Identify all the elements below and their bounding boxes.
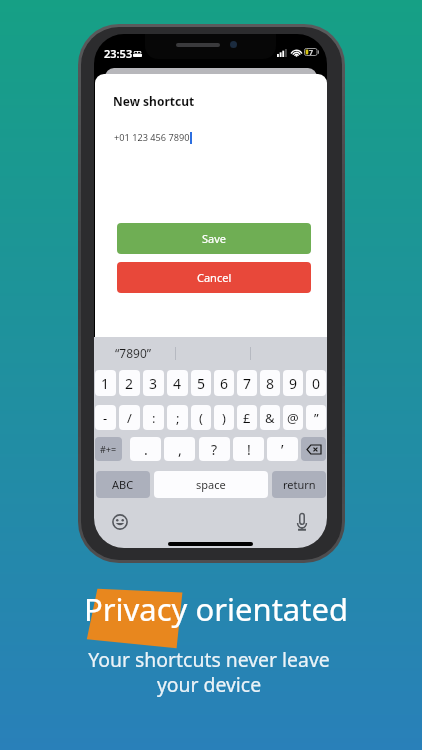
staticText: 1 bbox=[101, 374, 110, 393]
button[interactable]: 3 bbox=[143, 370, 164, 396]
button[interactable]: - bbox=[95, 405, 116, 430]
button[interactable]: , bbox=[164, 437, 195, 461]
staticText: ; bbox=[176, 409, 180, 427]
staticText: +01 123 456 7890 bbox=[114, 131, 190, 144]
button[interactable]: “7890” bbox=[99, 337, 168, 368]
staticText: 7 bbox=[309, 48, 314, 56]
staticText: Save bbox=[202, 231, 227, 246]
staticText: ABC bbox=[112, 477, 134, 492]
button[interactable]: ( bbox=[191, 405, 211, 430]
button[interactable]: @ bbox=[283, 405, 303, 430]
staticText: 4 bbox=[173, 374, 182, 393]
staticText: Cancel bbox=[197, 270, 232, 285]
button[interactable]: 0 bbox=[306, 370, 326, 396]
staticText: ) bbox=[222, 409, 226, 427]
button[interactable]: ) bbox=[214, 405, 234, 430]
staticText: - bbox=[103, 409, 108, 427]
staticText: 2 bbox=[125, 374, 134, 393]
staticText: , bbox=[178, 440, 182, 459]
staticText: ’ bbox=[281, 440, 284, 459]
staticText: @ bbox=[287, 409, 299, 427]
button[interactable]: 5 bbox=[191, 370, 211, 396]
staticText: ” bbox=[314, 409, 319, 427]
staticText: 6 bbox=[220, 374, 229, 393]
button[interactable]: : bbox=[143, 405, 164, 430]
staticText: New shortcut bbox=[113, 93, 195, 109]
staticText: return bbox=[283, 477, 316, 492]
button[interactable]: 6 bbox=[214, 370, 234, 396]
button[interactable]: ABC bbox=[96, 471, 150, 498]
button[interactable]: 9 bbox=[283, 370, 303, 396]
button[interactable]: / bbox=[119, 405, 140, 430]
button[interactable]: 1 bbox=[95, 370, 116, 396]
staticText: & bbox=[265, 409, 275, 427]
staticText: Your shortcuts never leave your device bbox=[88, 646, 330, 698]
staticText: 8 bbox=[266, 374, 275, 393]
staticText: 3 bbox=[149, 374, 158, 393]
button[interactable]: return bbox=[272, 471, 326, 498]
staticText: . bbox=[144, 440, 148, 459]
button[interactable]: ” bbox=[306, 405, 326, 430]
staticText: 23:53 bbox=[104, 46, 133, 61]
staticText: ( bbox=[199, 409, 203, 427]
button[interactable]: space bbox=[154, 471, 268, 498]
button[interactable]: ! bbox=[233, 437, 264, 461]
button[interactable]: Emoji bbox=[112, 514, 128, 530]
button[interactable]: 8 bbox=[260, 370, 280, 396]
button[interactable]: Save bbox=[117, 223, 311, 254]
button[interactable]: 4 bbox=[167, 370, 188, 396]
button[interactable]: . bbox=[130, 437, 161, 461]
button[interactable]: Cancel bbox=[117, 262, 311, 293]
button[interactable]: Dictation bbox=[296, 513, 308, 531]
button[interactable]: 2 bbox=[119, 370, 140, 396]
button[interactable]: ’ bbox=[267, 437, 298, 461]
staticText: ! bbox=[247, 440, 251, 459]
staticText: #+= bbox=[100, 443, 117, 455]
staticText: / bbox=[127, 409, 132, 427]
staticText: 5 bbox=[197, 374, 206, 393]
button[interactable]: ; bbox=[167, 405, 188, 430]
staticText: 7 bbox=[243, 374, 252, 393]
staticText: ? bbox=[211, 440, 218, 459]
staticText: 9 bbox=[289, 374, 298, 393]
button[interactable]: £ bbox=[237, 405, 257, 430]
staticText: : bbox=[152, 409, 156, 427]
button[interactable]: 7 bbox=[237, 370, 257, 396]
staticText: space bbox=[196, 477, 226, 492]
staticText: Privacy orientated bbox=[84, 588, 348, 630]
button[interactable]: #+= bbox=[95, 437, 122, 461]
staticText: “7890” bbox=[115, 345, 152, 361]
staticText: £ bbox=[243, 409, 251, 427]
staticText: 0 bbox=[312, 374, 321, 393]
button[interactable]: & bbox=[260, 405, 280, 430]
button[interactable]: Backspace bbox=[301, 437, 326, 461]
button[interactable]: ? bbox=[199, 437, 230, 461]
